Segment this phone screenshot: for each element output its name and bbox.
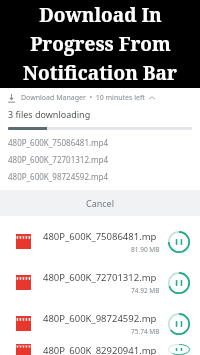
staticText: 3 files downloading <box>8 108 91 120</box>
button[interactable]: Cancel <box>0 190 200 216</box>
button[interactable]: Pause download <box>168 344 190 355</box>
staticText: Download In <box>39 2 162 28</box>
staticText: Progress From <box>30 31 171 57</box>
staticText: Cancel <box>86 197 115 209</box>
button[interactable]: Pause download <box>168 272 190 294</box>
staticText: 480P_600K_72701312.mp4 <box>8 154 109 165</box>
staticText: 480P_600K_72701312.mp4 <box>43 271 160 284</box>
staticText: Notification Bar <box>23 60 177 86</box>
staticText: Download Manager • 10 minutes left <box>21 93 145 103</box>
staticText: 480P_600K_98724592.mp4 <box>43 312 160 325</box>
button[interactable]: 480P_600K_72701312.mp4 <box>0 262 200 303</box>
staticText: 81.90 MB <box>131 245 160 254</box>
button[interactable]: 480P_600K_75086481.mp4 <box>0 221 200 262</box>
button[interactable]: Pause download <box>168 313 190 335</box>
button[interactable]: 480P_600K_82920941.mp4 <box>0 344 200 355</box>
button[interactable]: Pause download <box>168 231 190 253</box>
staticText: 480P_600K_98724592.mp4 <box>8 171 109 182</box>
button[interactable]: 480P_600K_98724592.mp4 <box>0 303 200 344</box>
staticText: 480P_600K_82920941.mp4 <box>43 344 160 355</box>
staticText: 480P_600K_75086481.mp4 <box>8 137 109 148</box>
staticText: 480P_600K_75086481.mp4 <box>43 230 160 243</box>
other: Collapse <box>149 95 155 101</box>
staticText: 74.92 MB <box>131 286 160 295</box>
staticText: 75.74 MB <box>131 327 160 336</box>
